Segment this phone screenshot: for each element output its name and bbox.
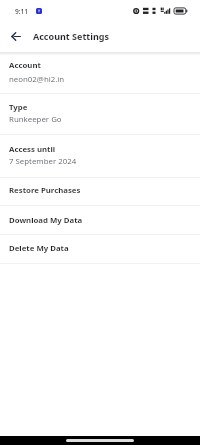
staticText: 7 September 2024	[9, 156, 77, 167]
staticText: Type	[9, 102, 28, 113]
button[interactable]: Account	[0, 53, 200, 94]
staticText: Delete My Data	[9, 243, 69, 254]
staticText: Download My Data	[9, 215, 83, 226]
staticText: Account Settings	[33, 30, 109, 42]
button[interactable]: Delete My Data	[0, 235, 200, 264]
button[interactable]: Download My Data	[0, 206, 200, 235]
staticText: 9:11	[15, 7, 29, 16]
staticText: Access until	[9, 144, 56, 155]
button[interactable]: Back	[1, 22, 29, 50]
staticText: Runkeeper Go	[9, 114, 62, 125]
staticText: Account	[9, 60, 41, 71]
button[interactable]: Type	[0, 94, 200, 135]
staticText: Restore Purchases	[9, 185, 81, 196]
button[interactable]: Restore Purchases	[0, 178, 200, 206]
staticText: neon02@hi2.in	[9, 74, 65, 85]
button[interactable]: Access until	[0, 135, 200, 178]
